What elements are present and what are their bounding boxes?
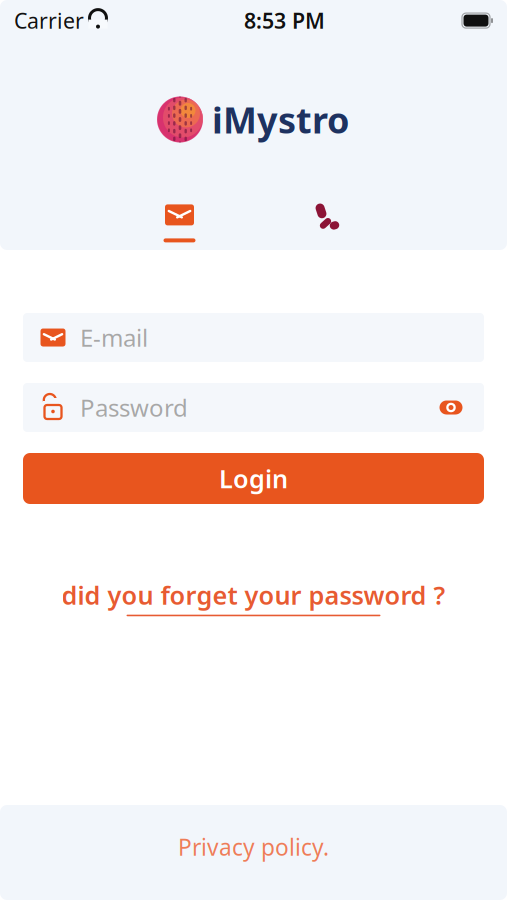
- staticText: Password: [80, 392, 188, 423]
- staticText: E-mail: [80, 322, 148, 353]
- button[interactable]: Sign in with phone number: [253, 180, 401, 242]
- staticText: Privacy policy.: [178, 832, 329, 862]
- staticText: Carrier: [14, 6, 84, 35]
- button[interactable]: Sign in with e-mail: [105, 180, 253, 242]
- staticText: 8:53 PM: [244, 6, 325, 35]
- button[interactable]: Login: [23, 453, 484, 504]
- staticText: did you forget your password ?: [61, 578, 445, 612]
- staticText: iMystro: [212, 96, 350, 143]
- button[interactable]: Show password: [435, 395, 467, 419]
- button[interactable]: did you forget your password ?: [55, 574, 451, 620]
- staticText: Login: [219, 462, 288, 495]
- button[interactable]: Privacy policy.: [168, 827, 339, 867]
